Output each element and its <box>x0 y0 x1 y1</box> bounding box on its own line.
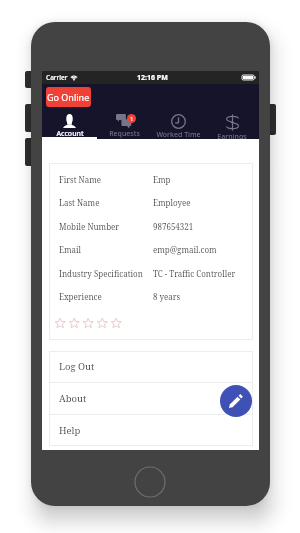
button[interactable]: 1 <box>97 108 151 139</box>
staticText: 8 years <box>153 291 181 302</box>
staticText: Employee <box>153 197 191 208</box>
button[interactable]: Account <box>42 108 97 139</box>
staticText: About <box>59 392 87 405</box>
staticText: 12:16 PM <box>137 73 168 83</box>
staticText: Earnings <box>217 132 247 139</box>
button[interactable]: Log Out <box>49 351 253 382</box>
button[interactable]: Help <box>49 415 253 446</box>
staticText: Industry Specification <box>59 268 153 279</box>
staticText: Last Name <box>59 197 153 208</box>
button[interactable]: Edit profile <box>220 385 252 417</box>
staticText: Log Out <box>59 360 95 373</box>
staticText: Mobile Number <box>59 221 153 232</box>
staticText: 1 <box>130 115 134 123</box>
staticText: 987654321 <box>153 221 194 232</box>
staticText: TC - Traffic Controller <box>153 268 236 279</box>
staticText: First Name <box>59 174 153 185</box>
staticText: Email <box>59 244 153 255</box>
button[interactable]: Worked Time <box>151 108 205 139</box>
staticText: Help <box>59 424 81 437</box>
button[interactable]: About <box>49 383 253 414</box>
button[interactable]: Earnings <box>205 108 259 139</box>
staticText: Experience <box>59 291 153 302</box>
staticText: Requests <box>109 129 140 139</box>
staticText: Worked Time <box>156 130 201 139</box>
staticText: Emp <box>153 174 171 185</box>
staticText: Go Online <box>47 91 90 103</box>
button[interactable]: Go Online <box>46 87 91 107</box>
staticText: emp@gmail.com <box>153 244 217 255</box>
staticText: Carrier <box>46 73 68 82</box>
staticText: Account <box>56 129 84 139</box>
